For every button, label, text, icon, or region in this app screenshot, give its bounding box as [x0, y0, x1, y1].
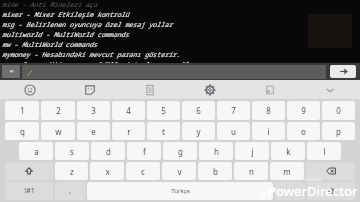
button[interactable]: l: [307, 142, 341, 160]
staticText: mw - MultiWorld commands: [2, 40, 97, 49]
button[interactable]: .: [275, 182, 305, 200]
button[interactable]: c: [126, 162, 160, 180]
staticText: mymoney - Hesabındaki mevcut paranı göst…: [2, 50, 181, 59]
staticText: f: [143, 146, 146, 157]
staticText: PowerDirector: [268, 182, 358, 200]
button[interactable]: i: [252, 122, 285, 140]
button[interactable]: b: [198, 162, 232, 180]
staticText: 9: [301, 105, 306, 116]
button[interactable]: k: [271, 142, 305, 160]
button[interactable]: 0: [322, 101, 355, 120]
staticText: w: [55, 126, 62, 137]
button[interactable]: x: [90, 162, 124, 180]
button[interactable]: f: [127, 142, 161, 160]
button[interactable]: v: [162, 162, 196, 180]
button[interactable]: h: [199, 142, 233, 160]
button[interactable]: Clipboard: [120, 80, 180, 99]
staticText: g: [178, 146, 183, 157]
staticText: c: [141, 166, 145, 177]
staticText: 5: [161, 105, 166, 116]
button[interactable]: Send: [330, 65, 356, 78]
staticText: v: [177, 166, 182, 177]
staticText: d: [106, 146, 111, 157]
button[interactable]: Enter: [307, 182, 355, 200]
staticText: q: [20, 126, 25, 137]
staticText: e: [91, 126, 96, 137]
button[interactable]: Türkçe: [87, 182, 273, 200]
staticText: t: [162, 126, 165, 137]
staticText: u: [231, 126, 236, 137]
button[interactable]: p: [322, 122, 355, 140]
button[interactable]: 5: [147, 101, 180, 120]
staticText: y: [196, 126, 201, 137]
button[interactable]: g: [163, 142, 197, 160]
button[interactable]: s: [55, 142, 89, 160]
button[interactable]: 3: [77, 101, 110, 120]
button[interactable]: r: [112, 122, 145, 140]
staticText: m: [283, 166, 291, 177]
staticText: /: [26, 67, 31, 78]
button[interactable]: n: [234, 162, 268, 180]
staticText: r: [127, 126, 131, 137]
button[interactable]: Emoji: [0, 80, 60, 99]
button[interactable]: 2: [41, 101, 75, 120]
button[interactable]: u: [217, 122, 250, 140]
button[interactable]: Backspace: [306, 162, 355, 180]
button[interactable]: z: [55, 162, 88, 180]
button[interactable]: j: [235, 142, 269, 160]
button[interactable]: Stickers: [60, 80, 120, 99]
button[interactable]: ,: [55, 182, 85, 200]
staticText: s: [70, 146, 74, 157]
staticText: Türkçe: [171, 187, 190, 195]
button[interactable]: 6: [182, 101, 215, 120]
staticText: b: [213, 166, 218, 177]
button[interactable]: Hide keyboard: [300, 80, 360, 99]
staticText: ,: [69, 186, 71, 196]
staticText: x: [105, 166, 110, 177]
button[interactable]: 9: [287, 101, 320, 120]
button[interactable]: d: [91, 142, 125, 160]
button[interactable]: Shift: [5, 162, 53, 180]
staticText: 8: [266, 105, 271, 116]
staticText: 2: [56, 105, 61, 116]
staticText: msg - Belirlenen oyuncuya özel mesaj yol…: [2, 20, 173, 29]
staticText: 7: [231, 105, 236, 116]
staticText: p: [336, 126, 341, 137]
button[interactable]: w: [41, 122, 75, 140]
staticText: !#1: [24, 186, 35, 196]
staticText: oy - Oy verdikten sonra ödülleri toplama…: [2, 60, 196, 63]
button[interactable]: e: [77, 122, 110, 140]
button[interactable]: 1: [5, 101, 39, 120]
button[interactable]: Settings: [180, 80, 240, 99]
staticText: a: [34, 146, 39, 157]
button[interactable]: Resize keyboard: [240, 80, 300, 99]
staticText: o: [301, 126, 306, 137]
button[interactable]: o: [287, 122, 320, 140]
staticText: n: [249, 166, 254, 177]
button[interactable]: 8: [252, 101, 285, 120]
staticText: mine - Anti Mineleri aça: [2, 0, 97, 9]
button[interactable]: 4: [112, 101, 145, 120]
staticText: multiworld - MultiWorld commands: [2, 30, 129, 39]
staticText: k: [286, 146, 291, 157]
button[interactable]: !#1: [5, 182, 53, 200]
staticText: mixer - Mixer Etkileşim kontrolü: [2, 10, 129, 19]
button[interactable]: a: [19, 142, 53, 160]
staticText: l: [323, 146, 326, 157]
staticText: 3: [91, 105, 96, 116]
button[interactable]: y: [182, 122, 215, 140]
button[interactable]: 7: [217, 101, 250, 120]
staticText: CyberLink: [305, 177, 322, 182]
button[interactable]: m: [270, 162, 304, 180]
button[interactable]: q: [5, 122, 39, 140]
button[interactable]: t: [147, 122, 180, 140]
button[interactable]: Command history: [2, 65, 20, 78]
staticText: .: [289, 186, 291, 196]
staticText: h: [214, 146, 219, 157]
staticText: 6: [196, 105, 201, 116]
staticText: 1: [20, 105, 25, 116]
staticText: i: [267, 126, 270, 137]
staticText: j: [251, 146, 254, 157]
